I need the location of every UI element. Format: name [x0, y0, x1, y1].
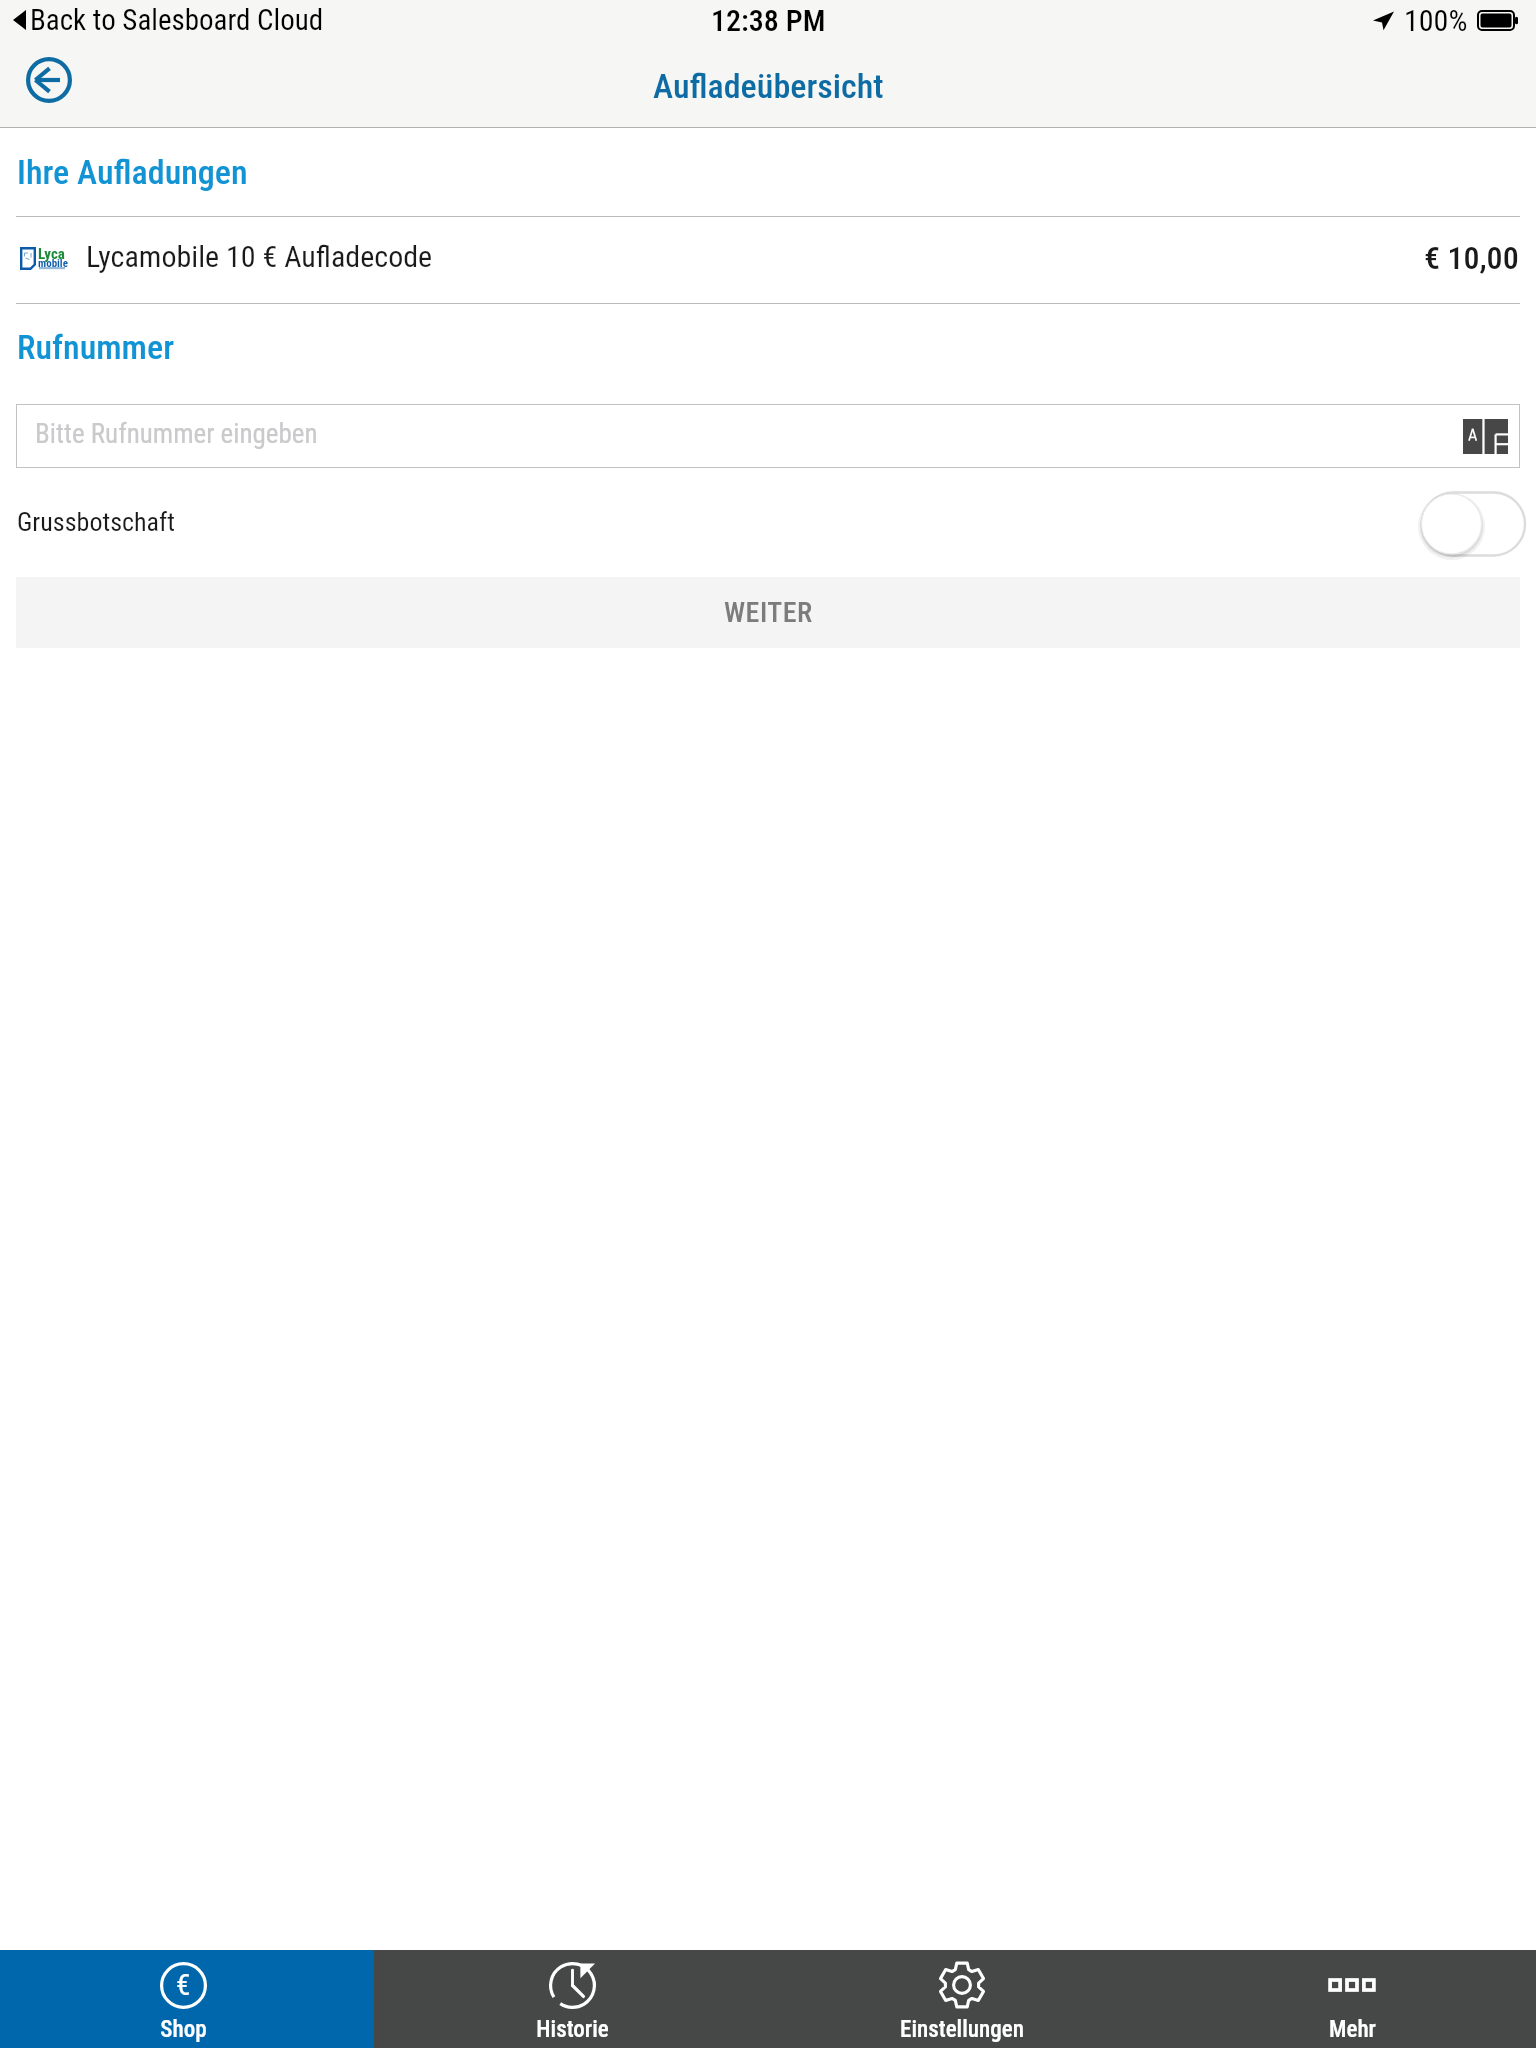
- staticText: € 10,00: [1424, 239, 1519, 277]
- staticText: Mehr: [1329, 2016, 1376, 2043]
- staticText: WEITER: [724, 596, 813, 629]
- staticText: Lyca: [38, 245, 65, 263]
- staticText: Lycamobile 10 € Aufladecode: [86, 239, 433, 274]
- button[interactable]: €: [0, 1950, 378, 2048]
- staticText: Aufladeübersicht: [653, 66, 884, 106]
- staticText: Shop: [160, 2016, 207, 2043]
- button[interactable]: Grussbotschaft: [16, 478, 1520, 570]
- button[interactable]: WEITER: [16, 577, 1520, 648]
- staticText: mobile: [38, 257, 68, 270]
- staticText: Grussbotschaft: [17, 507, 175, 537]
- button[interactable]: Einstellungen: [767, 1950, 1157, 2048]
- button[interactable]: Back: [26, 57, 72, 103]
- staticText: Ihre Aufladungen: [17, 152, 248, 192]
- button[interactable]: Historie: [377, 1950, 767, 2048]
- button[interactable]: Bitte Rufnummer eingeben: [16, 404, 1520, 468]
- button[interactable]: Lyca: [0, 217, 1536, 303]
- staticText: €: [176, 1968, 191, 2002]
- staticText: Einstellungen: [900, 2016, 1024, 2043]
- staticText: Bitte Rufnummer eingeben: [35, 418, 318, 450]
- button[interactable]: Grussbotschaft: [1419, 488, 1529, 560]
- button[interactable]: Mehr: [1157, 1950, 1536, 2048]
- staticText: Back to Salesboard Cloud: [30, 3, 324, 37]
- staticText: 12:38 PM: [711, 3, 826, 38]
- staticText: Historie: [536, 2016, 609, 2043]
- staticText: 100%: [1404, 3, 1468, 38]
- button[interactable]: Choose contact: [1463, 419, 1508, 454]
- staticText: Rufnummer: [17, 327, 175, 367]
